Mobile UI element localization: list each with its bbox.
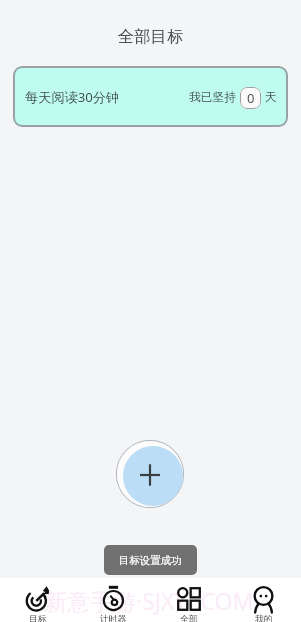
staticText: 全部目标: [118, 26, 184, 47]
button[interactable]: 我的: [226, 578, 301, 622]
staticText: 目标设置成功: [119, 554, 182, 567]
staticText: 我已坚持: [189, 90, 237, 105]
button[interactable]: 每天阅读30分钟: [13, 66, 288, 127]
staticText: 我的: [255, 614, 273, 622]
staticText: 全部: [180, 614, 198, 622]
staticText: 计时器: [100, 614, 127, 622]
staticText: 天: [265, 90, 277, 105]
button[interactable]: 目标: [0, 578, 76, 622]
staticText: 目标: [29, 614, 47, 622]
staticText: 0: [247, 89, 255, 107]
button[interactable]: 全部: [151, 578, 226, 622]
staticText: 每天阅读30分钟: [25, 88, 120, 106]
button[interactable]: 添加目标: [112, 436, 190, 514]
staticText: 新意手游·SJXYI.COM: [44, 585, 254, 616]
button[interactable]: 计时器: [76, 578, 151, 622]
